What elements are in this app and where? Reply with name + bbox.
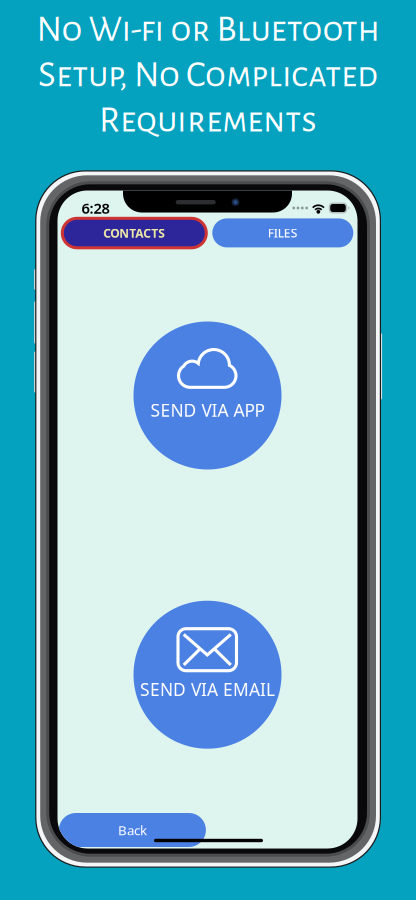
staticText: 6:28 <box>81 198 109 218</box>
staticText: Requirements <box>99 102 317 139</box>
button[interactable]: CONTACTS <box>61 217 208 249</box>
staticText: SEND VIA EMAIL <box>140 678 275 701</box>
staticText: No Wi-fi or Bluetooth <box>36 11 379 48</box>
staticText: FILES <box>268 225 298 241</box>
staticText: Setup, No Complicated <box>38 56 378 94</box>
staticText: CONTACTS <box>103 225 165 241</box>
staticText: Back <box>118 821 147 839</box>
staticText: SEND VIA APP <box>150 398 264 421</box>
button[interactable]: Back <box>59 813 206 847</box>
button[interactable]: SEND VIA APP <box>133 321 281 469</box>
button[interactable]: SEND VIA EMAIL <box>133 601 281 749</box>
button[interactable]: FILES <box>212 218 353 247</box>
